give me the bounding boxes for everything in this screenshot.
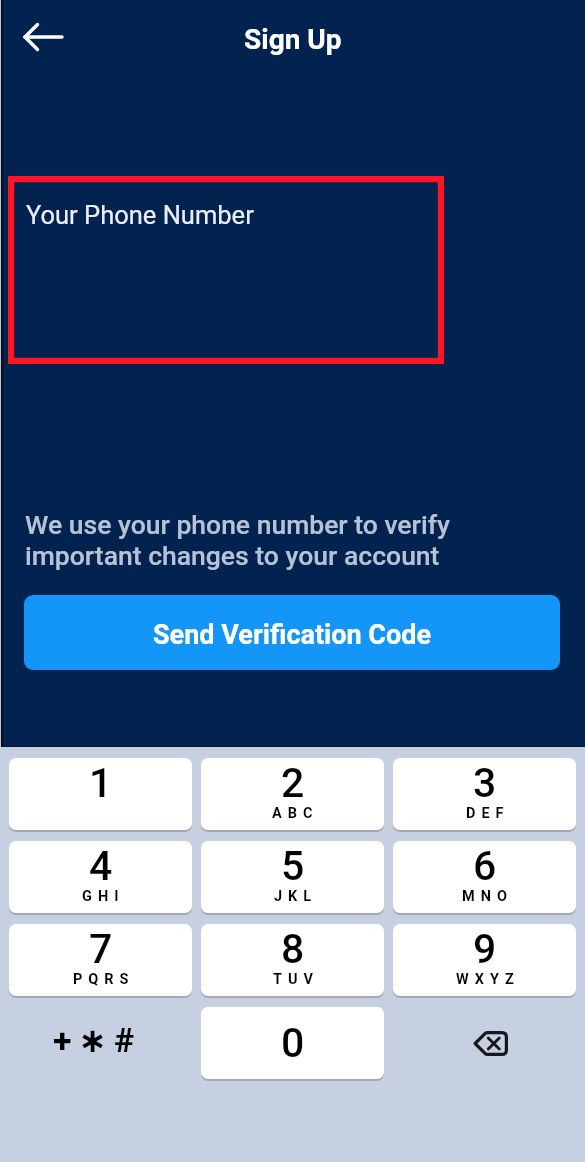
staticText: 2 <box>281 759 305 807</box>
staticText: 1 <box>89 759 113 807</box>
button[interactable]: 1 <box>9 758 192 830</box>
staticText: 9 <box>473 925 497 973</box>
button[interactable]: Your Phone Number <box>8 176 444 364</box>
button[interactable]: 8 <box>201 924 384 996</box>
staticText: 7 <box>89 925 113 973</box>
staticText: Sign Up <box>244 23 342 56</box>
button[interactable]: 0 <box>201 1007 384 1079</box>
staticText: We use your phone number to verify <box>25 509 450 540</box>
staticText: JKL <box>274 888 318 905</box>
staticText: MNO <box>462 888 513 905</box>
button[interactable]: 4 <box>9 841 192 913</box>
staticText: 5 <box>281 842 305 890</box>
button[interactable]: 7 <box>9 924 192 996</box>
button[interactable]: Send Verification Code <box>24 595 560 670</box>
staticText: DEF <box>466 805 510 822</box>
staticText: important changes to your account <box>25 540 440 571</box>
staticText: 4 <box>89 842 113 890</box>
button[interactable]: 6 <box>393 841 576 913</box>
staticText: Send Verification Code <box>153 619 432 651</box>
button[interactable]: Back <box>20 15 64 59</box>
button[interactable]: 9 <box>393 924 576 996</box>
staticText: WXYZ <box>456 971 520 988</box>
staticText: Your Phone Number <box>26 200 254 230</box>
staticText: 3 <box>473 759 497 807</box>
staticText: 0 <box>281 1019 305 1067</box>
staticText: TUV <box>273 971 319 988</box>
button[interactable]: 2 <box>201 758 384 830</box>
staticText: 8 <box>281 925 305 973</box>
staticText: ABC <box>272 805 319 822</box>
button[interactable]: 5 <box>201 841 384 913</box>
button[interactable]: +∗# <box>9 1007 192 1079</box>
button[interactable]: Backspace <box>393 1007 576 1079</box>
staticText: PQRS <box>73 971 135 988</box>
staticText: 6 <box>473 842 497 890</box>
button[interactable]: 3 <box>393 758 576 830</box>
staticText: GHI <box>82 888 125 905</box>
staticText: +∗# <box>53 1020 142 1060</box>
